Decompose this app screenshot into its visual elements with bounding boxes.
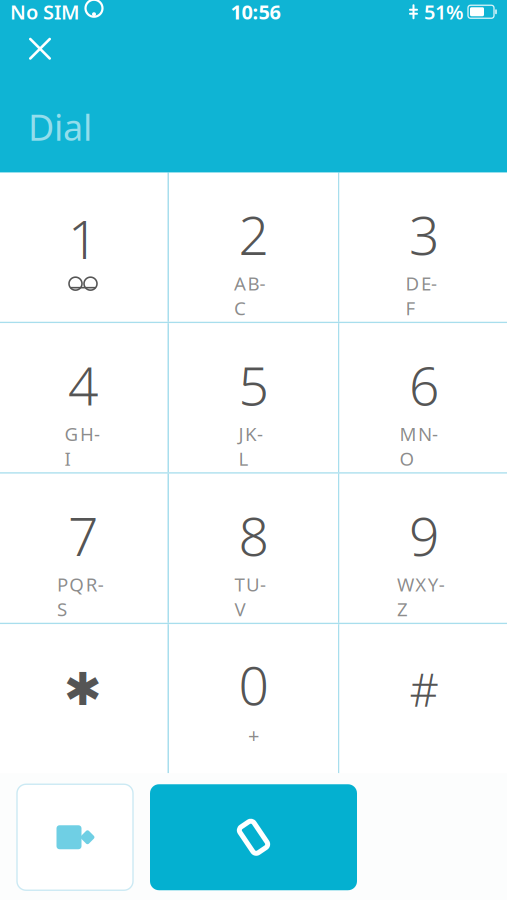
button[interactable]: 4	[0, 323, 167, 472]
staticText: ✱	[64, 663, 102, 715]
staticText: 1	[68, 203, 98, 274]
staticText: TUV	[235, 572, 272, 597]
button[interactable]: 0	[169, 624, 338, 773]
staticText: 2	[238, 199, 268, 270]
button[interactable]: 8	[169, 474, 338, 623]
button[interactable]: Call	[150, 784, 357, 890]
staticText: No SIM	[10, 0, 80, 25]
button[interactable]: ✱	[0, 624, 167, 773]
button[interactable]: #	[339, 624, 507, 773]
staticText: 6	[409, 349, 439, 420]
staticText: 7	[68, 500, 98, 571]
staticText: 10:56	[230, 0, 280, 25]
staticText: 8	[238, 500, 268, 571]
staticText: 9	[409, 500, 439, 571]
staticText: PQRS	[57, 572, 109, 597]
staticText: ABC	[234, 271, 273, 296]
button[interactable]: 7	[0, 474, 167, 623]
staticText: Dial	[28, 103, 92, 151]
staticText: DEF	[406, 271, 442, 296]
staticText: +	[248, 722, 259, 748]
staticText: GHI	[65, 421, 101, 446]
staticText: 51%	[424, 0, 464, 25]
staticText: MNO	[400, 421, 448, 446]
button[interactable]: 3	[339, 173, 507, 322]
staticText: 0	[238, 649, 268, 720]
button[interactable]: 2	[169, 173, 338, 322]
staticText: #	[409, 659, 438, 719]
staticText: 4	[68, 349, 98, 420]
staticText: 5	[238, 349, 268, 420]
staticText: 3	[409, 199, 439, 270]
button[interactable]: 9	[339, 474, 507, 623]
staticText: WXYZ	[397, 572, 451, 597]
button[interactable]: Close	[14, 27, 66, 71]
button[interactable]: 6	[339, 323, 507, 472]
staticText: JKL	[239, 421, 268, 446]
button[interactable]: 5	[169, 323, 338, 472]
button[interactable]: 1	[0, 173, 167, 322]
button[interactable]: Video call	[17, 784, 133, 890]
